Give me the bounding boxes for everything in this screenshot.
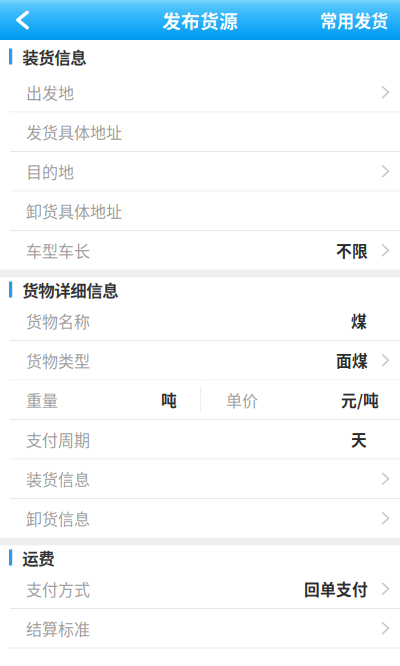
- staticText: 卸货具体地址: [26, 199, 122, 222]
- staticText: 货物类型: [26, 349, 90, 372]
- staticText: 支付方式: [26, 577, 90, 600]
- button[interactable]: 卸货具体地址: [0, 191, 400, 230]
- button[interactable]: 发货具体地址: [0, 112, 400, 151]
- staticText: 发货具体地址: [26, 120, 122, 143]
- button[interactable]: 货物类型: [0, 341, 400, 379]
- button[interactable]: 单价: [201, 380, 400, 419]
- staticText: 运费: [22, 546, 54, 569]
- button[interactable]: 结算标准: [0, 609, 400, 647]
- button[interactable]: Back: [0, 0, 58, 40]
- button[interactable]: 支付方式: [0, 569, 400, 608]
- staticText: 装货信息: [22, 45, 86, 68]
- staticText: 面煤: [336, 349, 368, 372]
- staticText: 元/吨: [341, 388, 379, 411]
- staticText: 结算标准: [26, 617, 90, 640]
- button[interactable]: 常用发货: [304, 0, 400, 40]
- staticText: 天: [351, 428, 367, 451]
- staticText: 装货信息: [26, 467, 90, 490]
- staticText: 支付周期: [26, 428, 90, 451]
- button[interactable]: 支付周期: [0, 420, 400, 458]
- button[interactable]: 出发地: [0, 73, 400, 111]
- staticText: 卸货信息: [26, 507, 90, 530]
- staticText: 发布货源: [162, 6, 238, 33]
- staticText: 货物详细信息: [22, 278, 118, 301]
- button[interactable]: 装货信息: [0, 459, 400, 498]
- staticText: 出发地: [26, 81, 74, 104]
- staticText: 不限: [336, 239, 368, 262]
- staticText: 单价: [226, 388, 258, 411]
- staticText: 货物名称: [26, 309, 90, 332]
- button[interactable]: 卸货信息: [0, 499, 400, 537]
- staticText: 回单支付: [304, 577, 368, 600]
- staticText: 重量: [26, 388, 58, 411]
- button[interactable]: 目的地: [0, 152, 400, 190]
- button[interactable]: 货物名称: [0, 301, 400, 340]
- staticText: 常用发货: [320, 8, 388, 32]
- staticText: 目的地: [26, 160, 74, 183]
- staticText: 吨: [161, 388, 177, 411]
- button[interactable]: 重量: [0, 380, 200, 419]
- staticText: 车型车长: [26, 239, 90, 262]
- staticText: 煤: [351, 309, 367, 332]
- button[interactable]: 车型车长: [0, 231, 400, 269]
